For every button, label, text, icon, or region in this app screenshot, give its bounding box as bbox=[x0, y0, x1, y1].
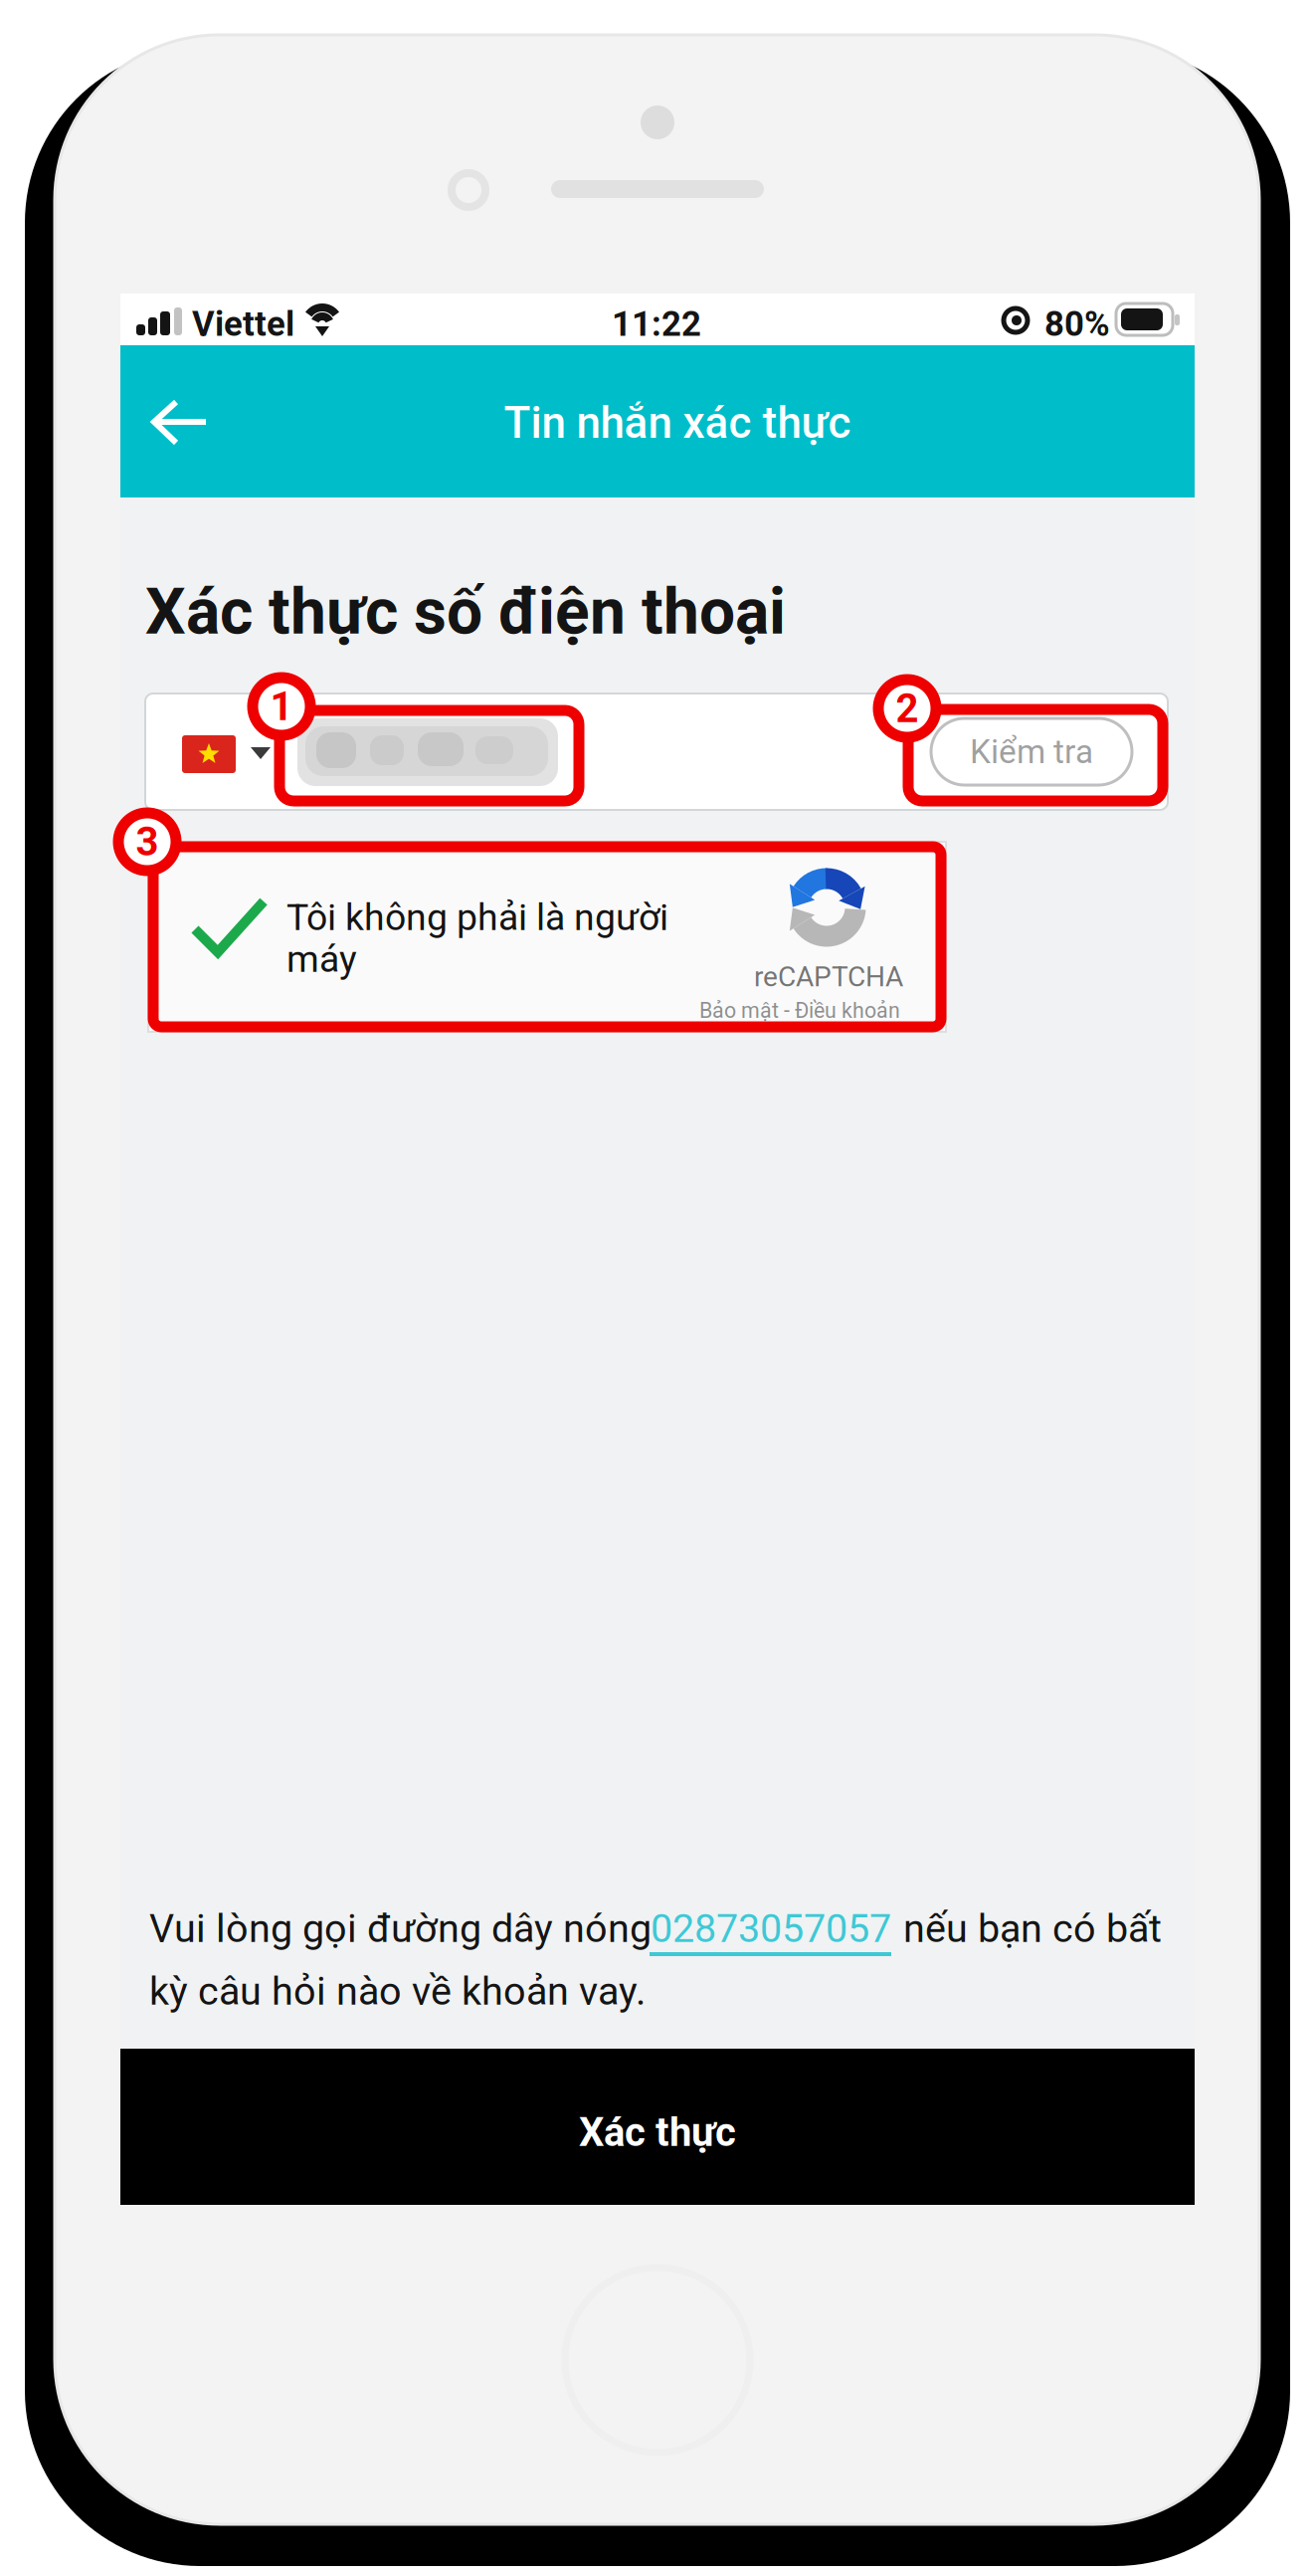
staticText: 2 bbox=[896, 685, 919, 732]
button[interactable]: Back bbox=[120, 367, 250, 477]
staticText: 1 bbox=[270, 683, 293, 730]
staticText: 02873057057 bbox=[651, 1906, 891, 1952]
staticText: Tôi không phải là người bbox=[286, 895, 668, 939]
staticText: Vui lòng gọi đường dây nóng bbox=[149, 1906, 652, 1952]
staticText: kỳ câu hỏi nào về khoản vay. bbox=[149, 1968, 646, 2014]
staticText: Bảo mật - Điều khoản bbox=[699, 998, 900, 1023]
staticText: máy bbox=[286, 937, 357, 981]
button[interactable]: Kiểm tra bbox=[931, 718, 1132, 785]
staticText: nếu bạn có bất bbox=[903, 1906, 1162, 1952]
staticText: Xác thực bbox=[579, 2109, 736, 2156]
staticText: Tin nhắn xác thực bbox=[504, 397, 851, 449]
button[interactable]: Xác thực bbox=[120, 2049, 1195, 2205]
staticText: Viettel bbox=[192, 304, 294, 344]
staticText: Kiểm tra bbox=[970, 732, 1093, 771]
staticText: 80% bbox=[1044, 304, 1110, 344]
staticText: Xác thực số điện thoại bbox=[145, 575, 786, 649]
staticText: reCAPTCHA bbox=[754, 960, 903, 993]
staticText: 11:22 bbox=[612, 304, 701, 344]
staticText: 3 bbox=[136, 818, 159, 865]
